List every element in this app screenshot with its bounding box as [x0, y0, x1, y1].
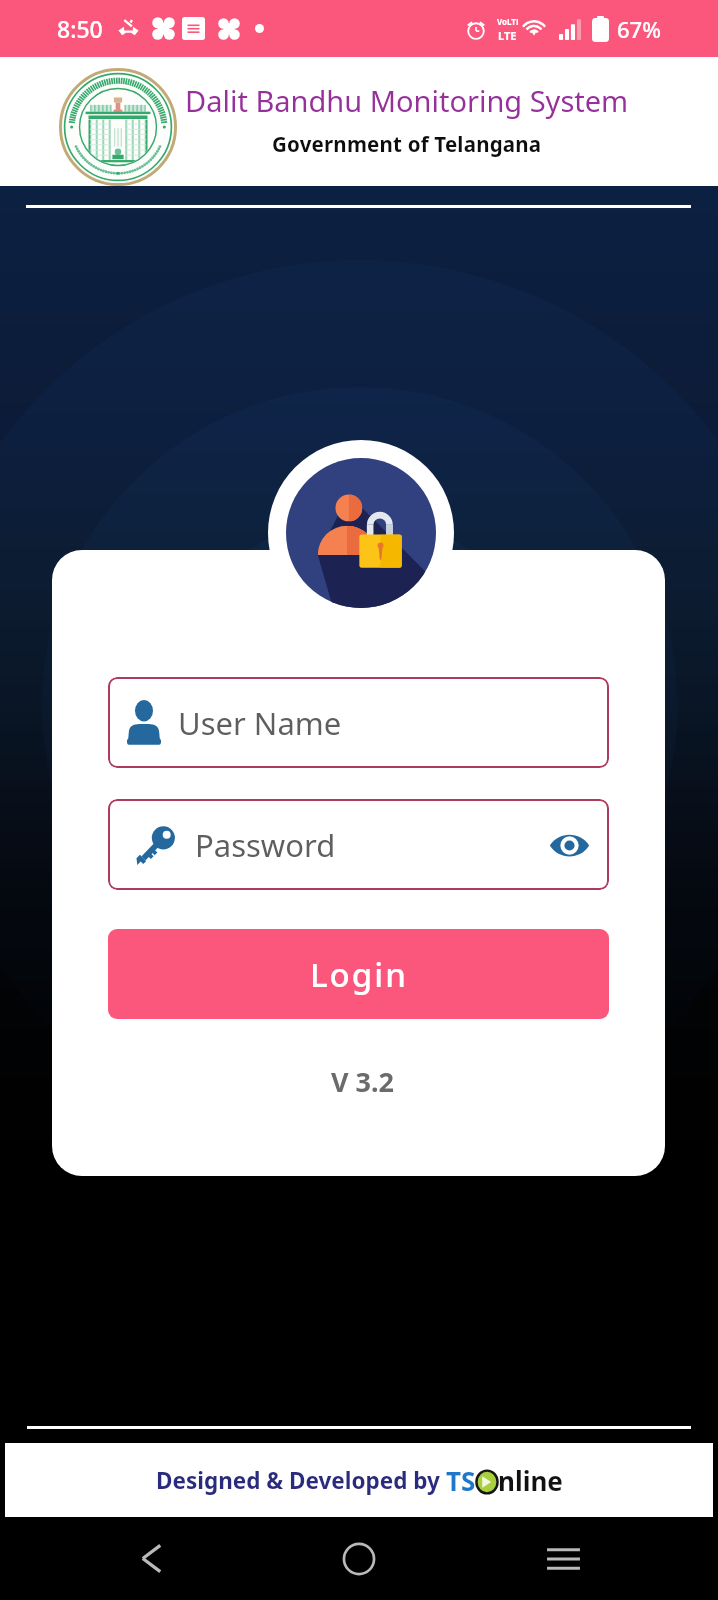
staticText: LTE: [498, 28, 517, 42]
staticText: VoLTE: [497, 16, 518, 27]
staticText: Login: [310, 952, 408, 997]
staticText: Designed & Developed by: [156, 1465, 446, 1496]
button[interactable]: Show password: [545, 821, 593, 869]
staticText: Password: [195, 824, 336, 866]
button[interactable]: Home: [323, 1517, 395, 1600]
button[interactable]: Login: [108, 929, 609, 1019]
staticText: V 3.2: [56, 1063, 665, 1100]
staticText: 8:50: [57, 13, 103, 44]
button[interactable]: Recent apps: [527, 1517, 599, 1600]
staticText: Dalit Bandhu Monitoring System: [185, 81, 629, 120]
button[interactable]: Password: [108, 799, 609, 890]
button[interactable]: User Name: [108, 677, 609, 768]
staticText: nline: [498, 1463, 563, 1498]
staticText: Government of Telangana: [272, 130, 542, 158]
button[interactable]: Back: [115, 1517, 187, 1600]
staticText: User Name: [178, 702, 342, 744]
staticText: 67%: [617, 14, 661, 44]
staticText: TS: [446, 1463, 476, 1498]
